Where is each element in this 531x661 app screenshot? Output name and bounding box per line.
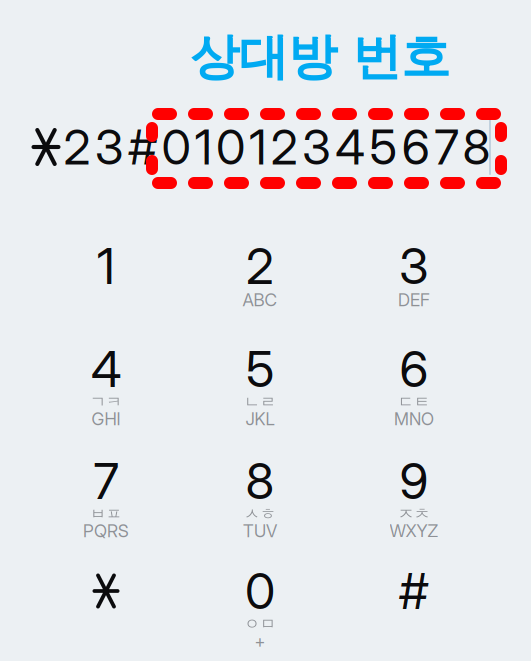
staticText: GHI <box>91 408 120 429</box>
button[interactable]: 7 <box>31 445 181 545</box>
button[interactable]: 0 <box>185 555 335 655</box>
button[interactable]: 2 <box>185 230 335 330</box>
staticText: 상대방 번호 <box>190 26 450 88</box>
button[interactable]: 4 <box>31 333 181 433</box>
button[interactable]: 6 <box>339 333 489 433</box>
staticText: # <box>399 561 429 621</box>
button[interactable]: 1 <box>31 230 181 330</box>
staticText: 1 <box>97 236 115 296</box>
button[interactable]: # <box>339 555 489 655</box>
staticText: ㄱㅋ <box>90 392 122 412</box>
staticText: JKL <box>245 408 274 429</box>
staticText: ㄷㅌ <box>398 392 430 412</box>
button[interactable]: 9 <box>339 445 489 545</box>
staticText: 5 <box>246 339 274 399</box>
staticText: + <box>254 630 265 651</box>
staticText: WXYZ <box>389 520 438 541</box>
staticText: 0 <box>245 561 275 621</box>
staticText: 6 <box>399 339 428 399</box>
staticText: 2 <box>246 236 274 296</box>
staticText: ㅇㅁ <box>244 614 276 634</box>
staticText: ㅅㅎ <box>244 504 276 524</box>
staticText: 9 <box>399 451 428 511</box>
staticText: ㅂㅍ <box>90 504 122 524</box>
staticText: 4 <box>91 339 121 399</box>
staticText: 7 <box>93 451 118 511</box>
button[interactable]: 5 <box>185 333 335 433</box>
staticText: ABC <box>242 289 277 310</box>
staticText: DEF <box>398 289 430 310</box>
staticText: 23#01012345678 <box>64 118 490 176</box>
staticText: 8 <box>245 451 274 511</box>
staticText: ㅈㅊ <box>398 504 430 524</box>
staticText: PQRS <box>83 520 129 541</box>
staticText: TUV <box>243 520 277 541</box>
button[interactable]: 3 <box>339 230 489 330</box>
button[interactable]: 8 <box>185 445 335 545</box>
staticText: 3 <box>399 236 429 296</box>
button[interactable] <box>31 555 181 655</box>
staticText: ㄴㄹ <box>244 392 276 412</box>
staticText: MNO <box>394 408 434 429</box>
